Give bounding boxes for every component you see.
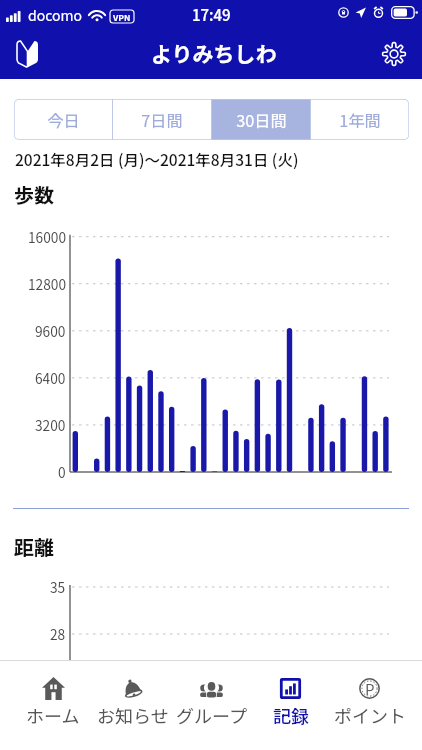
- staticText: P: [365, 678, 375, 700]
- staticText: 1年間: [339, 108, 381, 132]
- button[interactable]: 30日間: [212, 99, 310, 140]
- button[interactable]: 7日間: [113, 99, 211, 140]
- staticText: ポイント: [334, 702, 406, 728]
- staticText: 12800: [28, 274, 66, 294]
- staticText: 30日間: [236, 108, 287, 132]
- staticText: 距離: [14, 532, 54, 561]
- staticText: docomo: [28, 5, 82, 25]
- staticText: 2021年8月2日 (月)〜2021年8月31日 (火): [15, 148, 299, 170]
- button[interactable]: App logo: [11, 38, 43, 70]
- staticText: ホーム: [26, 702, 80, 728]
- button[interactable]: グループ: [172, 661, 251, 750]
- button[interactable]: 記録: [251, 661, 330, 750]
- button[interactable]: Settings: [376, 36, 412, 72]
- staticText: 0: [58, 462, 66, 482]
- staticText: 28: [50, 624, 66, 644]
- staticText: グループ: [176, 702, 247, 728]
- staticText: 17:49: [192, 4, 231, 26]
- staticText: 7日間: [141, 108, 183, 132]
- button[interactable]: お知らせ: [93, 661, 172, 750]
- staticText: 35: [50, 577, 66, 597]
- button[interactable]: 今日: [14, 99, 112, 140]
- staticText: 記録: [273, 702, 309, 728]
- staticText: 今日: [47, 108, 80, 132]
- staticText: 9600: [35, 321, 66, 341]
- staticText: VPN: [113, 11, 131, 23]
- staticText: お知らせ: [97, 702, 169, 728]
- button[interactable]: 1年間: [311, 99, 409, 140]
- button[interactable]: ホーム: [13, 661, 93, 750]
- staticText: 3200: [35, 415, 66, 435]
- staticText: よりみちしわ: [151, 38, 277, 68]
- staticText: 16000: [28, 227, 66, 247]
- staticText: 6400: [35, 368, 66, 388]
- button[interactable]: P: [330, 661, 409, 750]
- staticText: 歩数: [14, 180, 54, 209]
